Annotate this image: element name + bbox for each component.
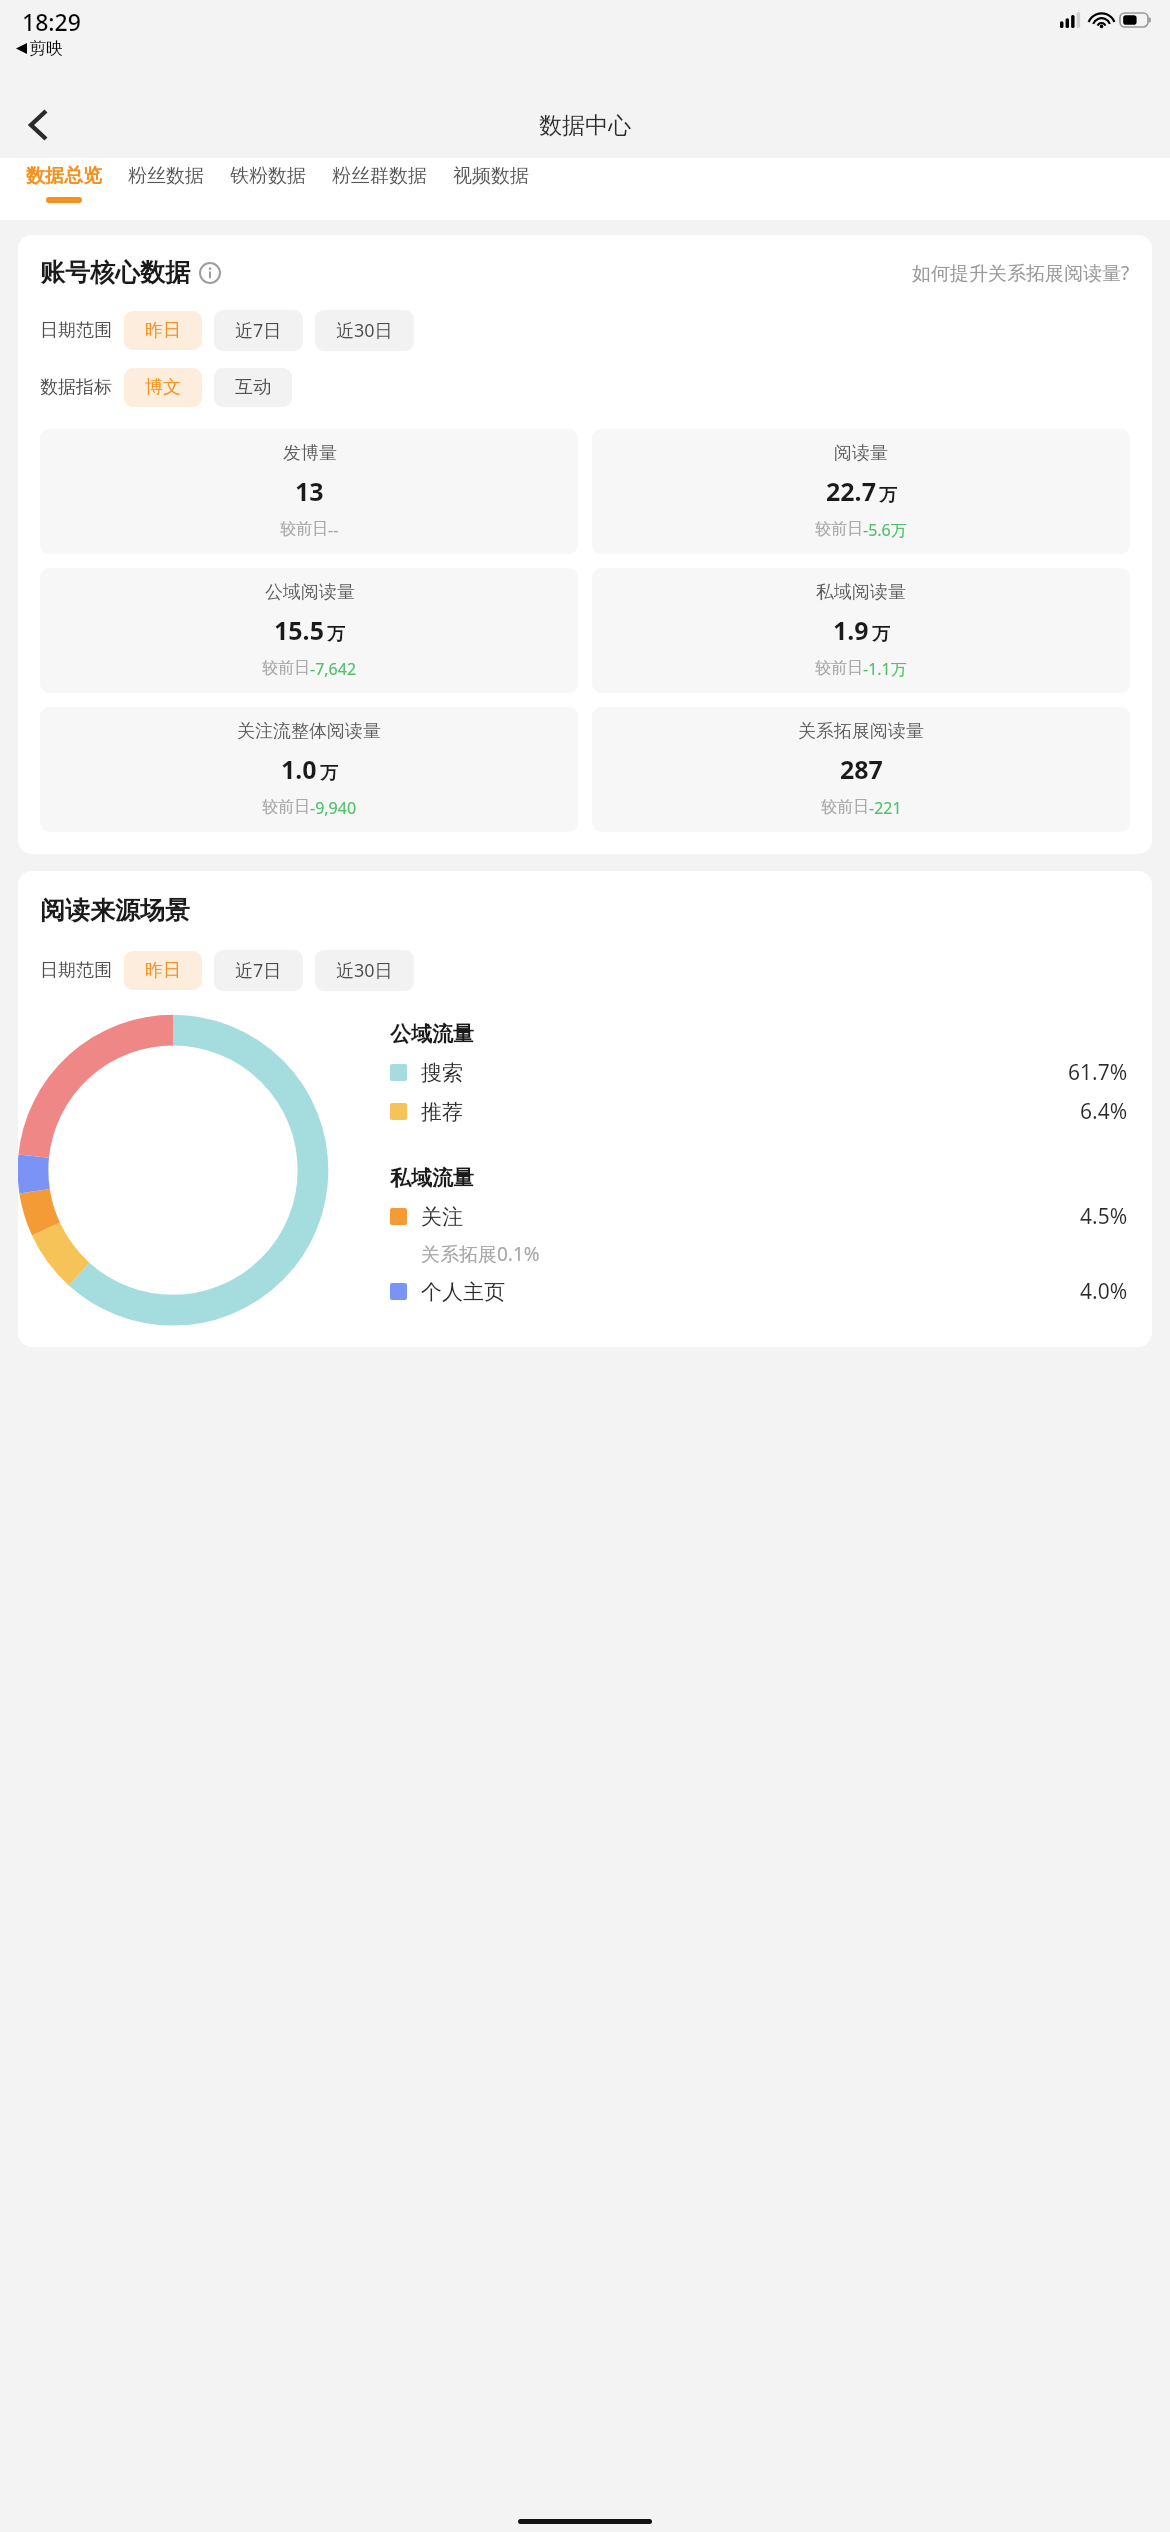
staticText: 万	[879, 484, 897, 507]
staticText: 近7日	[235, 958, 282, 983]
button[interactable]: 近7日	[214, 950, 303, 991]
staticText: 13	[295, 474, 324, 508]
staticText: -221	[869, 797, 902, 819]
staticText: 昨日	[145, 959, 181, 982]
staticText: -7,642	[310, 658, 357, 680]
button[interactable]: 铁粉数据	[230, 158, 306, 220]
staticText: 近7日	[235, 318, 282, 343]
staticText: 287	[840, 752, 883, 786]
staticText: 公域流量	[390, 1021, 474, 1047]
button[interactable]: 阅读量	[592, 429, 1130, 554]
staticText: 15.5	[274, 613, 324, 647]
staticText: 关注流整体阅读量	[237, 720, 381, 743]
staticText: 账号核心数据	[40, 257, 190, 288]
staticText: 粉丝数据	[128, 164, 204, 188]
button[interactable]: 互动	[214, 368, 292, 407]
button[interactable]: 关注流整体阅读量	[40, 707, 578, 832]
button[interactable]: 昨日	[124, 311, 202, 350]
staticText: 数据指标	[40, 376, 112, 399]
button[interactable]: Back	[12, 99, 64, 151]
staticText: 剪映	[29, 38, 63, 59]
button[interactable]: 视频数据	[453, 158, 529, 220]
staticText: 昨日	[145, 319, 181, 342]
staticText: 万	[327, 623, 345, 646]
staticText: -5.6万	[863, 519, 907, 541]
staticText: 公域阅读量	[265, 581, 355, 604]
staticText: 万	[320, 762, 338, 785]
staticText: 关系拓展0.1%	[421, 1241, 540, 1267]
staticText: 近30日	[336, 318, 393, 343]
staticText: 61.7%	[1068, 1058, 1128, 1087]
button[interactable]: 私域阅读量	[592, 568, 1130, 693]
button[interactable]: 如何提升关系拓展阅读量?	[912, 260, 1130, 286]
staticText: 较前日	[262, 658, 310, 678]
staticText: 阅读来源场景	[40, 895, 190, 926]
staticText: 数据总览	[26, 164, 102, 188]
staticText: 关注	[421, 1204, 463, 1230]
staticText: 数据中心	[539, 111, 631, 140]
staticText: 1.9	[833, 613, 869, 647]
button[interactable]: 公域阅读量	[40, 568, 578, 693]
button[interactable]: 近30日	[315, 950, 414, 991]
staticText: 6.4%	[1080, 1097, 1128, 1126]
button[interactable]: 数据总览	[26, 158, 102, 220]
staticText: 视频数据	[453, 164, 529, 188]
staticText: 日期范围	[40, 959, 112, 982]
staticText: 万	[872, 623, 890, 646]
button[interactable]: 近7日	[214, 310, 303, 351]
staticText: 私域流量	[390, 1165, 474, 1191]
staticText: -9,940	[310, 797, 357, 819]
staticText: 近30日	[336, 958, 393, 983]
staticText: 关系拓展阅读量	[798, 720, 924, 743]
button[interactable]: 昨日	[124, 951, 202, 990]
staticText: 私域阅读量	[816, 581, 906, 604]
staticText: 推荐	[421, 1099, 463, 1125]
button[interactable]: 近30日	[315, 310, 414, 351]
staticText: 日期范围	[40, 319, 112, 342]
staticText: --	[328, 519, 339, 541]
staticText: 22.7	[826, 474, 876, 508]
staticText: 较前日	[280, 519, 328, 539]
staticText: 较前日	[815, 519, 863, 539]
staticText: 发博量	[283, 442, 337, 465]
staticText: 铁粉数据	[230, 164, 306, 188]
staticText: 较前日	[262, 797, 310, 817]
staticText: 4.5%	[1080, 1202, 1128, 1231]
staticText: 个人主页	[421, 1279, 505, 1305]
button[interactable]: 关系拓展阅读量	[592, 707, 1130, 832]
button[interactable]: 发博量	[40, 429, 578, 554]
staticText: 18:29	[22, 6, 81, 37]
button[interactable]: Info	[198, 261, 222, 285]
staticText: 粉丝群数据	[332, 164, 427, 188]
button[interactable]: 粉丝群数据	[332, 158, 427, 220]
staticText: 博文	[145, 376, 181, 399]
staticText: 互动	[235, 376, 271, 399]
staticText: 阅读量	[834, 442, 888, 465]
button[interactable]: 博文	[124, 368, 202, 407]
staticText: 1.0	[281, 752, 317, 786]
button[interactable]: 粉丝数据	[128, 158, 204, 220]
staticText: 搜索	[421, 1060, 463, 1086]
staticText: 4.0%	[1080, 1277, 1128, 1306]
staticText: -1.1万	[863, 658, 907, 680]
staticText: 较前日	[815, 658, 863, 678]
staticText: 较前日	[821, 797, 869, 817]
